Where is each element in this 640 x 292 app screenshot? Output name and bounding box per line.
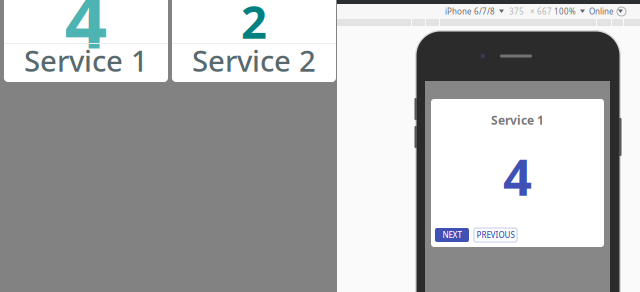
button[interactable]: 100%: [554, 4, 585, 19]
button[interactable]: Online: [589, 4, 623, 19]
staticText: Service 1: [24, 41, 148, 80]
button[interactable]: iPhone 6/7/8: [445, 4, 504, 19]
button[interactable]: NEXT: [435, 228, 469, 242]
staticText: Online: [589, 6, 614, 17]
button[interactable]: Throttling settings: [614, 4, 629, 19]
staticText: iPhone 6/7/8: [445, 6, 495, 17]
staticText: PREVIOUS: [476, 230, 514, 240]
staticText: 667: [537, 6, 552, 17]
staticText: 4: [64, 0, 107, 69]
staticText: 100%: [554, 6, 576, 17]
staticText: Service 2: [192, 41, 316, 80]
staticText: ×: [530, 6, 535, 17]
staticText: NEXT: [442, 230, 461, 240]
staticText: 375: [509, 6, 524, 17]
button[interactable]: 2: [172, 0, 336, 82]
staticText: Service 1: [491, 112, 544, 128]
button[interactable]: 4: [4, 0, 168, 82]
staticText: 4: [503, 142, 532, 210]
staticText: 2: [241, 0, 267, 51]
button[interactable]: PREVIOUS: [474, 228, 517, 242]
